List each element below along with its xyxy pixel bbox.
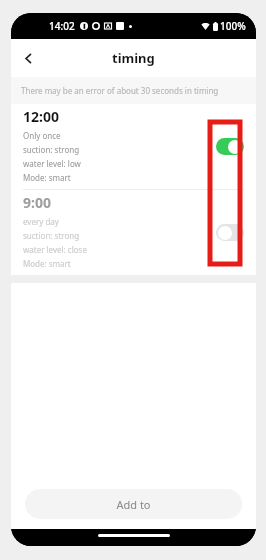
staticText: suction: strong xyxy=(23,230,80,241)
button[interactable]: Turn on timer xyxy=(216,224,244,241)
button[interactable]: Turn off timer xyxy=(216,138,244,155)
staticText: timing xyxy=(112,49,155,67)
staticText: 12:00 xyxy=(23,107,59,126)
staticText: Mode: smart xyxy=(23,258,71,269)
staticText: water level: low xyxy=(23,158,81,169)
staticText: Mode: smart xyxy=(23,172,71,183)
button[interactable]: 9:00 xyxy=(11,190,256,275)
button[interactable]: Add to xyxy=(25,489,242,519)
staticText: 100% xyxy=(220,19,246,33)
button[interactable]: 12:00 xyxy=(11,104,256,189)
staticText: Only once xyxy=(23,130,61,141)
staticText: suction: strong xyxy=(23,144,80,155)
staticText: Add to xyxy=(116,497,151,512)
staticText: There may be an error of about 30 second… xyxy=(21,85,219,96)
button[interactable]: Back xyxy=(11,41,45,75)
staticText: 14:02 xyxy=(49,19,75,33)
staticText: 9:00 xyxy=(23,193,51,212)
staticText: every day xyxy=(23,216,59,227)
staticText: water level: close xyxy=(23,244,87,255)
